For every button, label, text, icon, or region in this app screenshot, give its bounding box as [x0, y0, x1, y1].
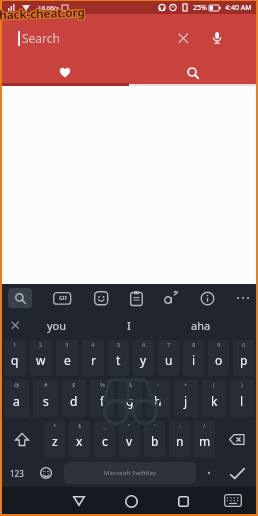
button[interactable]: $	[62, 380, 86, 417]
button[interactable]: I	[93, 312, 165, 338]
button[interactable]: *	[44, 421, 65, 457]
staticText: '	[154, 422, 156, 430]
staticText: "	[128, 422, 131, 430]
button[interactable]: 5	[108, 340, 129, 376]
staticText: #	[44, 381, 48, 389]
button[interactable]: )	[230, 380, 254, 417]
staticText: hack-cheat.org	[0, 3, 86, 22]
staticText: _	[103, 422, 106, 430]
button[interactable]: 8	[183, 340, 204, 376]
button[interactable]: :	[169, 421, 190, 457]
button[interactable]	[94, 291, 109, 306]
staticText: $	[72, 381, 76, 389]
button[interactable]: 0	[233, 340, 254, 376]
staticText: 3	[65, 341, 69, 349]
button[interactable]: 2	[30, 340, 52, 376]
button[interactable]: 4	[82, 340, 104, 376]
staticText: m	[199, 433, 211, 449]
staticText: you	[47, 318, 67, 333]
staticText: s	[43, 393, 49, 409]
button[interactable]	[168, 23, 198, 53]
staticText: n	[176, 433, 184, 449]
staticText: hack-cheat.org	[0, 4, 84, 23]
staticText: $	[78, 422, 82, 430]
staticText: hack-cheat.org	[0, 2, 86, 21]
button[interactable]: /	[194, 421, 215, 457]
staticText: c	[102, 433, 108, 449]
button[interactable]: aha	[165, 312, 237, 338]
button[interactable]: 3	[56, 340, 78, 376]
staticText: aha	[191, 318, 211, 333]
button[interactable]: -	[146, 380, 170, 417]
button[interactable]	[218, 487, 248, 514]
staticText: 0	[242, 341, 246, 349]
button[interactable]: Microsoft SwiftKey	[64, 462, 196, 484]
button[interactable]: you	[21, 312, 93, 338]
staticText: :	[179, 422, 181, 430]
staticText: o	[215, 352, 223, 368]
button[interactable]	[236, 291, 250, 305]
staticText: 8	[192, 341, 196, 349]
button[interactable]	[170, 488, 196, 514]
button[interactable]	[66, 488, 92, 514]
staticText: u	[165, 352, 173, 368]
staticText: y	[140, 352, 147, 368]
staticText: 6	[142, 341, 146, 349]
staticText: x	[76, 433, 83, 449]
staticText: hack-cheat.org	[0, 4, 85, 23]
staticText: &	[128, 381, 133, 389]
button[interactable]: @	[4, 380, 29, 417]
staticText: 9	[217, 341, 221, 349]
staticText: k	[211, 393, 218, 409]
button[interactable]: +	[174, 380, 198, 417]
button[interactable]	[8, 288, 32, 308]
button[interactable]	[2, 62, 129, 83]
button[interactable]	[202, 23, 232, 53]
button[interactable]	[200, 291, 215, 306]
button[interactable]: '	[144, 421, 165, 457]
staticText: I	[127, 318, 131, 333]
button[interactable]	[163, 290, 179, 306]
button[interactable]	[32, 459, 60, 487]
button[interactable]: 9	[208, 340, 229, 376]
button[interactable]: #	[33, 380, 58, 417]
staticText: 123	[10, 468, 24, 479]
staticText: i	[192, 352, 196, 368]
staticText: Search	[22, 30, 168, 46]
staticText: 2	[39, 341, 43, 349]
staticText: b	[151, 433, 159, 449]
button[interactable]: 7	[158, 340, 179, 376]
staticText: +	[184, 381, 188, 389]
button[interactable]	[200, 459, 218, 487]
button[interactable]: "	[119, 421, 140, 457]
staticText: d	[70, 393, 78, 409]
button[interactable]: 1	[4, 340, 26, 376]
button[interactable]	[129, 62, 256, 83]
button[interactable]: $	[69, 421, 90, 457]
button[interactable]: _	[94, 421, 115, 457]
staticText: *	[53, 422, 57, 430]
staticText: /	[203, 422, 206, 430]
button[interactable]	[217, 419, 256, 459]
staticText: 1	[13, 341, 17, 349]
button[interactable]: (	[202, 380, 226, 417]
button[interactable]: 6	[133, 340, 154, 376]
staticText: hack-cheat.org	[0, 3, 84, 22]
staticText: 18.6B/s	[38, 4, 59, 12]
button[interactable]: &	[118, 380, 142, 417]
button[interactable]: 123	[2, 459, 32, 487]
button[interactable]	[118, 488, 144, 514]
button[interactable]	[130, 291, 143, 306]
staticText: 5	[117, 341, 121, 349]
button[interactable]	[2, 419, 42, 459]
staticText: a	[13, 393, 20, 409]
button[interactable]: %	[90, 380, 114, 417]
button[interactable]: GIF	[53, 292, 73, 305]
button[interactable]	[218, 459, 256, 487]
staticText: %	[100, 381, 105, 389]
staticText: f	[100, 393, 105, 409]
staticText: r	[91, 352, 96, 368]
staticText: GIF	[59, 295, 68, 302]
button[interactable]	[2, 312, 28, 338]
staticText: 4:40 AM	[225, 3, 252, 13]
